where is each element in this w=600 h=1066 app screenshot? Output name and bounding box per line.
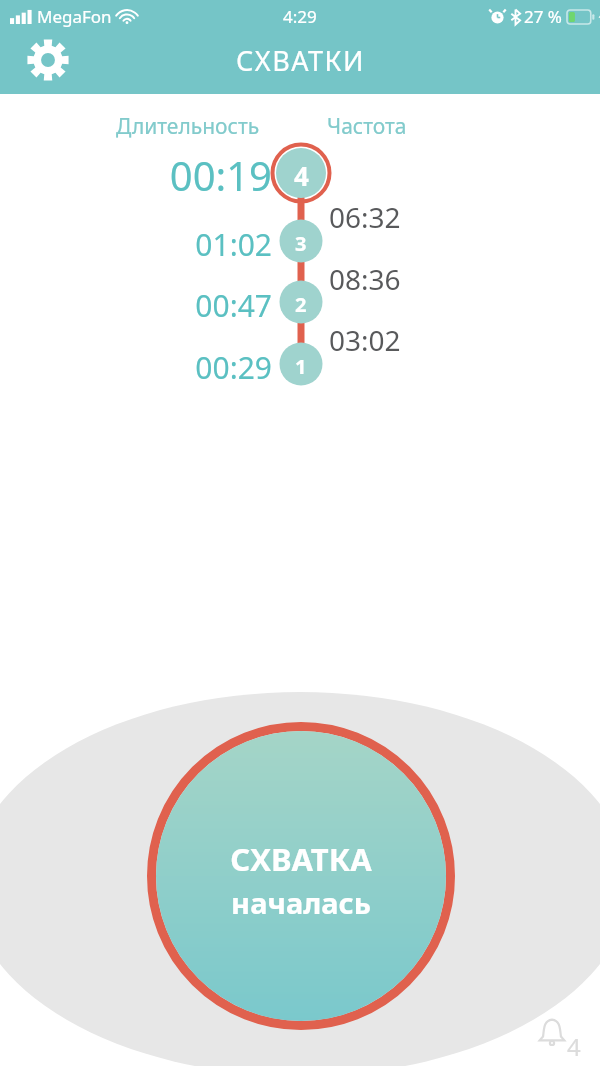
staticText: 00:47 — [195, 285, 272, 326]
button[interactable]: Notifications — [536, 1012, 592, 1058]
staticText: 27 % — [524, 5, 562, 28]
staticText: СХВАТКА — [230, 838, 372, 880]
staticText: 08:36 — [329, 260, 401, 298]
staticText: 4 — [567, 1030, 581, 1063]
staticText: началась — [231, 883, 371, 922]
button[interactable]: Settings — [24, 36, 72, 84]
staticText: 3 — [295, 230, 307, 257]
staticText: 1 — [295, 353, 307, 380]
staticText: 2 — [295, 291, 307, 318]
staticText: 00:19 — [169, 148, 272, 202]
staticText: 4 — [294, 158, 309, 188]
staticText: 06:32 — [329, 198, 401, 236]
staticText: Длительность — [116, 112, 260, 141]
staticText: 00:29 — [195, 347, 272, 388]
button[interactable]: Contraction started — [0, 0, 600, 1066]
staticText: 01:02 — [195, 224, 272, 265]
staticText: СХВАТКИ — [236, 42, 365, 79]
staticText: MegaFon — [37, 5, 112, 28]
staticText: Частота — [327, 112, 407, 141]
staticText: 4:29 — [283, 5, 317, 28]
staticText: 03:02 — [329, 321, 401, 359]
